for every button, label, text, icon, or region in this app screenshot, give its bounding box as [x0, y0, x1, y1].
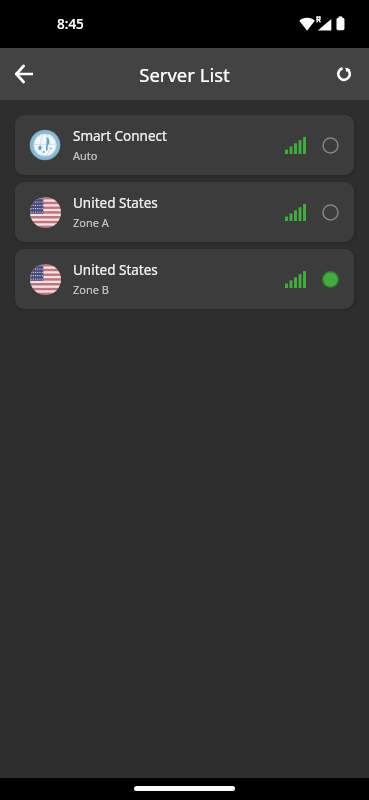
- staticText: Zone A: [73, 215, 109, 230]
- button[interactable]: Select server: [320, 202, 341, 223]
- button[interactable]: Smart Connect: [15, 115, 354, 175]
- button[interactable]: Selected server: [320, 269, 341, 290]
- button[interactable]: Refresh: [324, 54, 364, 94]
- staticText: Zone B: [73, 282, 109, 297]
- staticText: Auto: [73, 148, 98, 163]
- button[interactable]: Select server: [320, 135, 341, 156]
- staticText: Server List: [139, 62, 230, 87]
- staticText: Smart Connect: [73, 127, 167, 145]
- button[interactable]: United States: [15, 182, 354, 242]
- staticText: 8:45: [57, 15, 84, 33]
- staticText: United States: [73, 261, 158, 279]
- button[interactable]: United States: [15, 249, 354, 309]
- staticText: United States: [73, 194, 158, 212]
- button[interactable]: Back: [4, 54, 44, 94]
